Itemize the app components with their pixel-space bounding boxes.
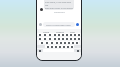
button[interactable] xyxy=(47,33,52,36)
button[interactable] xyxy=(57,37,61,40)
button[interactable] xyxy=(57,33,61,36)
button[interactable]: that xyxy=(70,30,75,33)
button[interactable] xyxy=(37,37,42,40)
button[interactable] xyxy=(70,45,74,48)
button[interactable] xyxy=(45,45,50,48)
button[interactable] xyxy=(42,33,47,36)
button[interactable] xyxy=(62,45,66,48)
button[interactable]: thanks xyxy=(56,30,64,33)
button[interactable] xyxy=(37,33,42,36)
button[interactable] xyxy=(59,41,63,44)
button[interactable]: Sure thing, I can send over the xyxy=(44,0,74,10)
button[interactable] xyxy=(50,45,54,48)
button[interactable] xyxy=(69,37,73,40)
button[interactable]: Send xyxy=(76,23,79,26)
button[interactable] xyxy=(42,37,47,40)
button[interactable]: there xyxy=(43,30,50,33)
button[interactable] xyxy=(37,49,43,52)
button[interactable] xyxy=(67,41,71,44)
button[interactable] xyxy=(47,37,52,40)
button[interactable] xyxy=(73,37,77,40)
button[interactable] xyxy=(77,33,81,36)
button[interactable] xyxy=(66,45,70,48)
button[interactable] xyxy=(52,33,57,36)
button[interactable] xyxy=(65,37,69,40)
button[interactable] xyxy=(54,41,59,44)
button[interactable] xyxy=(65,33,69,36)
button[interactable] xyxy=(63,41,67,44)
button[interactable] xyxy=(58,45,62,48)
button[interactable] xyxy=(39,41,44,44)
button[interactable] xyxy=(69,33,73,36)
staticText: Sure thing, I can send over the xyxy=(45,1,73,7)
button[interactable] xyxy=(44,41,49,44)
button[interactable] xyxy=(61,37,65,40)
button[interactable] xyxy=(75,41,79,44)
button[interactable] xyxy=(61,33,65,36)
button[interactable]: Type a message here xyxy=(43,22,75,27)
button[interactable] xyxy=(52,37,57,40)
button[interactable] xyxy=(49,41,54,44)
staticText: Type a message here xyxy=(46,23,71,26)
button[interactable] xyxy=(54,45,58,48)
staticText: Delivered xyxy=(54,10,65,13)
button[interactable] xyxy=(74,49,81,52)
button[interactable]: Add attachment xyxy=(39,23,42,26)
button[interactable] xyxy=(71,41,75,44)
staticText: files later today if that works xyxy=(45,7,73,10)
button[interactable] xyxy=(77,37,81,40)
button[interactable] xyxy=(73,33,77,36)
